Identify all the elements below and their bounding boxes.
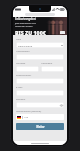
button[interactable]: Weiter: [16, 123, 64, 130]
staticText: Exklusivangebot: [15, 17, 36, 21]
button[interactable]: Exklusivangebot: [13, 17, 67, 35]
button[interactable]: Passwort anzeigen: [16, 102, 64, 108]
staticText: Vorname: [16, 62, 26, 65]
button[interactable]: +49: [16, 114, 64, 120]
staticText: Jetzt registrieren und: [15, 22, 36, 25]
button[interactable]: [16, 66, 39, 72]
button[interactable]: [16, 90, 64, 96]
staticText: Passwort: [16, 98, 26, 101]
staticText: Deutschland: [18, 44, 33, 47]
staticText: Land: [16, 38, 22, 41]
staticText: Weiter: [36, 125, 45, 129]
button[interactable]: Passwort anzeigen: [60, 104, 63, 107]
staticText: Adresszusatz: [16, 50, 30, 53]
staticText: +49: [24, 116, 28, 119]
button[interactable]: Deutschland: [16, 42, 64, 48]
staticText: Mobilnummer (optional): [16, 110, 42, 113]
staticText: Straße/Hausnr.: [16, 74, 32, 77]
button[interactable]: [41, 66, 64, 72]
staticText: E-Mail: [16, 86, 23, 89]
staticText: Nachname: [41, 62, 53, 65]
button[interactable]: Info: [60, 31, 65, 34]
staticText: Gutschein sichern: [15, 25, 33, 28]
button[interactable]: [16, 54, 64, 60]
button[interactable]: [16, 78, 64, 84]
staticText: BIS ZU 100€: [15, 29, 46, 35]
